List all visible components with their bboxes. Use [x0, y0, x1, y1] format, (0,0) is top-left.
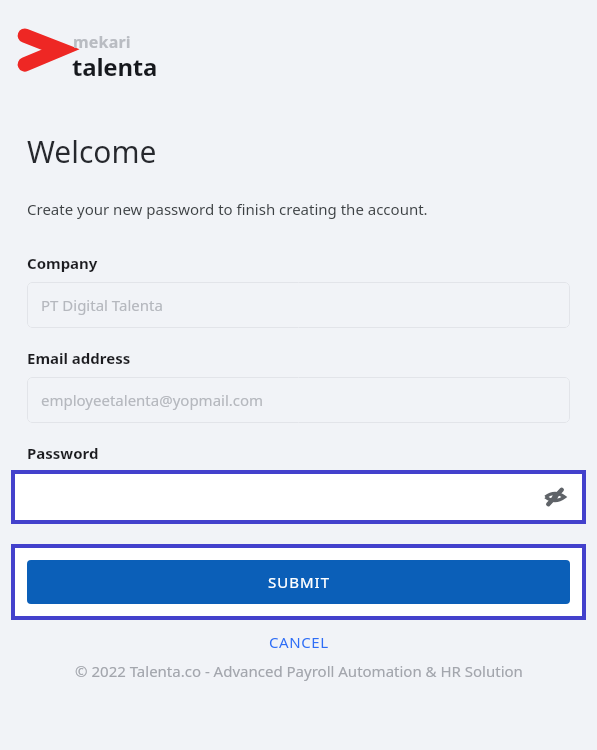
staticText: mekari: [73, 31, 131, 53]
staticText: employeetalenta@yopmail.com: [41, 390, 264, 410]
button[interactable]: SUBMIT: [27, 560, 570, 604]
button[interactable]: PT Digital Talenta: [27, 282, 570, 328]
staticText: PT Digital Talenta: [41, 295, 163, 315]
staticText: talenta: [72, 50, 158, 83]
button[interactable]: employeetalenta@yopmail.com: [27, 377, 570, 423]
staticText: Password: [27, 443, 99, 463]
button[interactable]: CANCEL: [0, 632, 597, 652]
staticText: Create your new password to finish creat…: [27, 199, 428, 219]
button[interactable]: Show password: [543, 485, 567, 509]
button[interactable]: Show password: [15, 474, 582, 520]
staticText: Email address: [27, 348, 131, 368]
staticText: SUBMIT: [268, 572, 330, 592]
staticText: © 2022 Talenta.co - Advanced Payroll Aut…: [75, 661, 523, 681]
staticText: CANCEL: [269, 632, 329, 652]
staticText: Welcome: [27, 131, 157, 172]
staticText: Company: [27, 253, 98, 273]
